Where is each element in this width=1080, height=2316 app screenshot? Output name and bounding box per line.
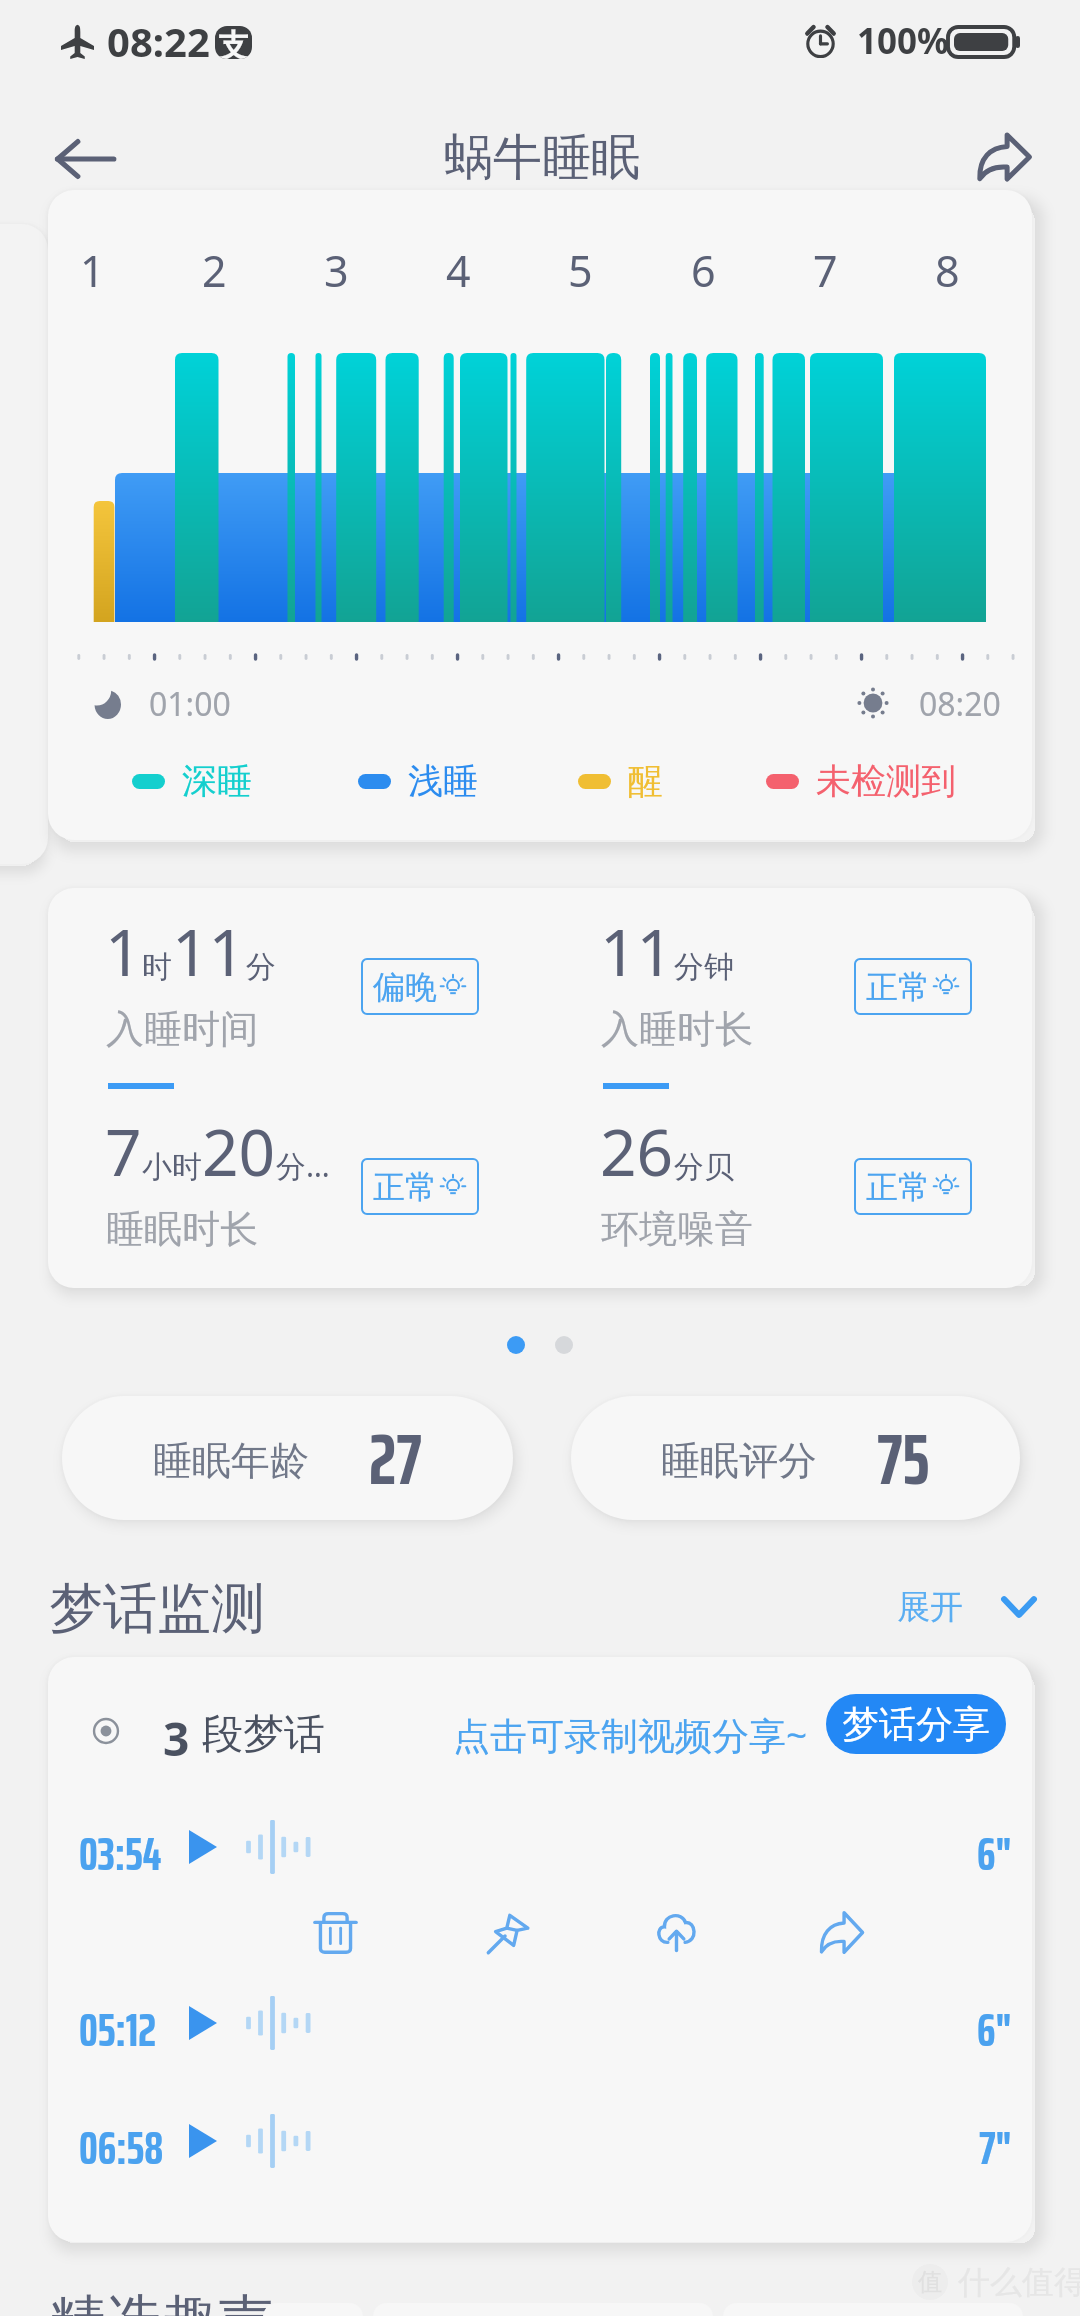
staticText: 6 bbox=[691, 241, 716, 297]
button[interactable]: 正常 bbox=[854, 1158, 972, 1215]
staticText: 醒 bbox=[628, 759, 663, 803]
staticText: 6" bbox=[977, 1993, 1012, 2053]
staticText: 27 bbox=[369, 1402, 422, 1515]
staticText: 4 bbox=[446, 241, 471, 297]
staticText: 入睡时长 bbox=[601, 1005, 753, 1053]
staticText: 环境噪音 bbox=[601, 1205, 753, 1253]
button[interactable]: 偏晚 bbox=[361, 958, 479, 1015]
button[interactable]: 醒 bbox=[578, 757, 663, 805]
staticText: 20 bbox=[202, 1108, 276, 1195]
staticText: 分… bbox=[276, 1145, 330, 1186]
button[interactable]: Back bbox=[40, 114, 130, 204]
button[interactable]: Share bbox=[801, 1892, 881, 1972]
staticText: 5 bbox=[568, 241, 593, 297]
staticText: 06:58 bbox=[79, 2111, 164, 2171]
staticText: 支 bbox=[218, 26, 249, 59]
staticText: 8 bbox=[935, 241, 960, 297]
staticText: 6" bbox=[977, 1817, 1012, 1877]
staticText: 3 bbox=[163, 1707, 190, 1770]
staticText: 正常 bbox=[373, 1167, 437, 1207]
staticText: 偏晚 bbox=[373, 967, 437, 1007]
button[interactable]: 浅睡 bbox=[358, 757, 478, 805]
button[interactable]: 正常 bbox=[361, 1158, 479, 1215]
button[interactable] bbox=[60, 1811, 1020, 1883]
staticText: 2 bbox=[202, 241, 227, 297]
button[interactable]: 深睡 bbox=[132, 757, 252, 805]
staticText: 正常 bbox=[866, 1167, 930, 1207]
staticText: 7 bbox=[105, 1108, 142, 1195]
staticText: 蜗牛睡眠 bbox=[444, 127, 640, 189]
staticText: 08:22 bbox=[107, 14, 210, 68]
staticText: 睡眠年龄 bbox=[153, 1436, 309, 1485]
staticText: 梦话分享 bbox=[842, 1701, 990, 1748]
staticText: 08:20 bbox=[919, 682, 1001, 726]
staticText: 时 bbox=[142, 948, 172, 986]
button[interactable]: 睡眠年龄 bbox=[62, 1396, 513, 1520]
staticText: 分 bbox=[246, 948, 276, 986]
button[interactable] bbox=[60, 2105, 1020, 2177]
staticText: 入睡时间 bbox=[106, 1005, 258, 1053]
staticText: 分贝 bbox=[674, 1148, 734, 1186]
button[interactable]: Upload bbox=[636, 1892, 716, 1972]
staticText: 未检测到 bbox=[816, 759, 956, 803]
staticText: 1 bbox=[105, 908, 142, 995]
button[interactable]: Delete bbox=[295, 1892, 375, 1972]
staticText: 11 bbox=[600, 908, 674, 995]
staticText: 1 bbox=[80, 241, 105, 297]
staticText: 01:00 bbox=[149, 682, 231, 726]
staticText: 3 bbox=[324, 241, 349, 297]
button[interactable] bbox=[60, 1987, 1020, 2059]
button[interactable]: 展开 bbox=[890, 1576, 1036, 1638]
button[interactable]: Pin bbox=[468, 1892, 548, 1972]
button[interactable]: 点击可录制视频分享~ bbox=[453, 1709, 808, 1760]
button[interactable]: Share bbox=[959, 112, 1049, 202]
button[interactable]: 睡眠评分 bbox=[571, 1396, 1020, 1520]
staticText: 精选趣声 bbox=[49, 2286, 273, 2316]
staticText: 7 bbox=[813, 241, 838, 297]
staticText: 段梦话 bbox=[202, 1709, 325, 1761]
staticText: 睡眠时长 bbox=[106, 1205, 258, 1253]
button[interactable]: 未检测到 bbox=[766, 757, 956, 805]
staticText: 什么值得买 bbox=[958, 2262, 1080, 2302]
staticText: 7" bbox=[979, 2111, 1012, 2171]
staticText: 浅睡 bbox=[408, 759, 478, 803]
staticText: 正常 bbox=[866, 967, 930, 1007]
button[interactable]: 正常 bbox=[854, 958, 972, 1015]
staticText: 睡眠评分 bbox=[661, 1436, 817, 1485]
staticText: 05:12 bbox=[79, 1993, 157, 2053]
staticText: 26 bbox=[600, 1108, 674, 1195]
staticText: 75 bbox=[877, 1402, 930, 1515]
staticText: 小时 bbox=[142, 1148, 202, 1186]
staticText: 梦话监测 bbox=[49, 1575, 265, 1643]
staticText: 11 bbox=[172, 908, 246, 995]
button[interactable]: 梦话分享 bbox=[826, 1694, 1006, 1754]
staticText: 深睡 bbox=[182, 759, 252, 803]
staticText: 分钟 bbox=[674, 948, 734, 986]
staticText: 100% bbox=[857, 17, 949, 65]
staticText: 展开 bbox=[897, 1586, 963, 1628]
staticText: 值 bbox=[918, 2267, 942, 2297]
staticText: 03:54 bbox=[79, 1817, 162, 1877]
